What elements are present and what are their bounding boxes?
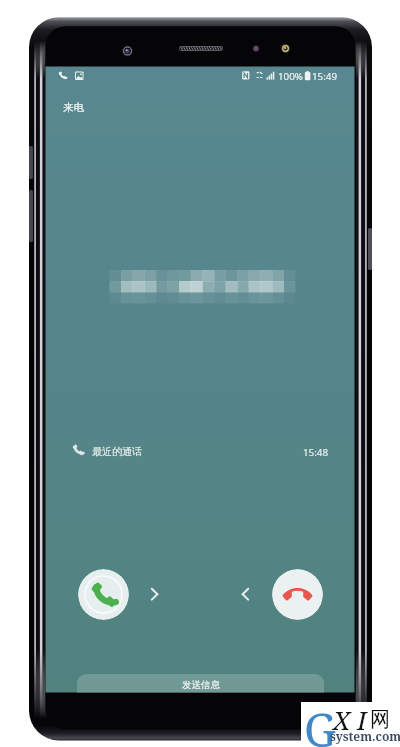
staticText: 发送信息 <box>182 679 220 691</box>
staticText: 15:49 <box>312 70 338 83</box>
staticText: 15:48 <box>303 446 329 459</box>
staticText: 网 <box>370 707 390 732</box>
button[interactable]: Answer options <box>146 584 164 606</box>
staticText: system.com <box>330 728 400 744</box>
button[interactable]: 发送信息 <box>77 674 324 693</box>
staticText: 最近的通话 <box>92 445 142 458</box>
staticText: X I <box>333 702 367 737</box>
button[interactable]: Decline call <box>272 569 323 620</box>
staticText: G <box>304 699 337 747</box>
staticText: 100% <box>278 70 303 83</box>
staticText: 来电 <box>63 101 84 114</box>
button[interactable]: Answer call <box>78 569 129 620</box>
button[interactable]: Decline options <box>236 584 254 606</box>
